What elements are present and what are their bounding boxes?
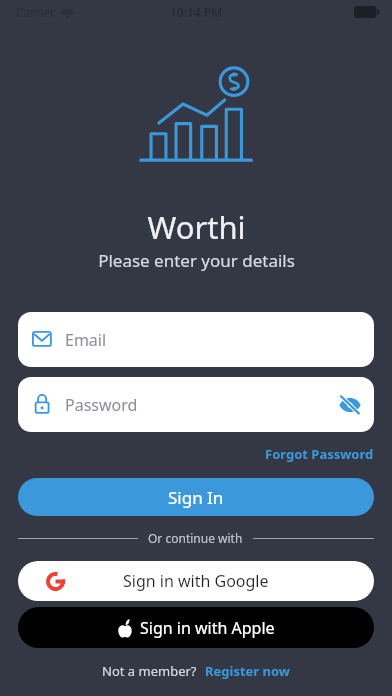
staticText: Sign in with Google (123, 570, 269, 592)
button[interactable]: Sign in with Google (18, 561, 374, 601)
staticText: Sign In (168, 486, 224, 509)
button[interactable]: Sign In (18, 478, 374, 516)
staticText: Sign in with Apple (140, 617, 275, 639)
button[interactable]: Password (18, 377, 374, 432)
staticText: Password (65, 394, 138, 416)
button[interactable]: Register now (205, 662, 290, 680)
staticText: Please enter your details (98, 249, 295, 272)
button[interactable]: Email (18, 312, 374, 367)
staticText: Carrier (16, 4, 56, 20)
staticText: Or continue with (148, 530, 243, 546)
staticText: Email (65, 329, 107, 351)
button[interactable]: Show password (337, 392, 363, 418)
button[interactable]: Forgot Password (265, 445, 374, 463)
staticText: 10:14 PM (170, 4, 223, 20)
button[interactable]: Sign in with Apple (18, 607, 374, 648)
staticText: Worthi (147, 206, 246, 248)
staticText: Not a member? (102, 662, 197, 680)
